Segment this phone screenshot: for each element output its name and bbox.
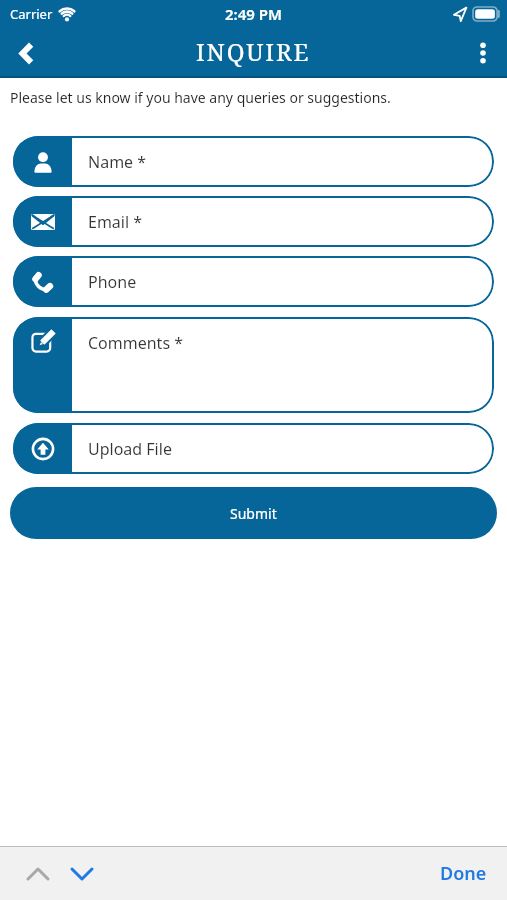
button[interactable]: Done — [440, 861, 487, 886]
button[interactable] — [8, 35, 44, 71]
staticText: Phone — [88, 271, 137, 293]
staticText: Upload File — [88, 438, 172, 460]
staticText: Done — [440, 861, 487, 886]
staticText: 2:49 PM — [225, 4, 282, 24]
staticText: Comments * — [88, 332, 184, 354]
button[interactable]: Submit — [10, 487, 497, 539]
button[interactable]: Comments * — [13, 317, 494, 413]
staticText: Email * — [88, 211, 143, 233]
staticText: Submit — [230, 504, 277, 523]
staticText: INQUIRE — [196, 35, 311, 68]
button[interactable] — [22, 858, 54, 890]
button[interactable]: Email * — [13, 196, 494, 247]
button[interactable] — [465, 35, 501, 71]
button[interactable] — [66, 858, 98, 890]
button[interactable]: Name * — [13, 136, 494, 187]
staticText: Carrier — [10, 5, 53, 23]
staticText: Please let us know if you have any queri… — [10, 88, 391, 107]
button[interactable]: Phone — [13, 256, 494, 307]
staticText: Name * — [88, 151, 147, 173]
button[interactable]: Upload File — [13, 423, 494, 474]
